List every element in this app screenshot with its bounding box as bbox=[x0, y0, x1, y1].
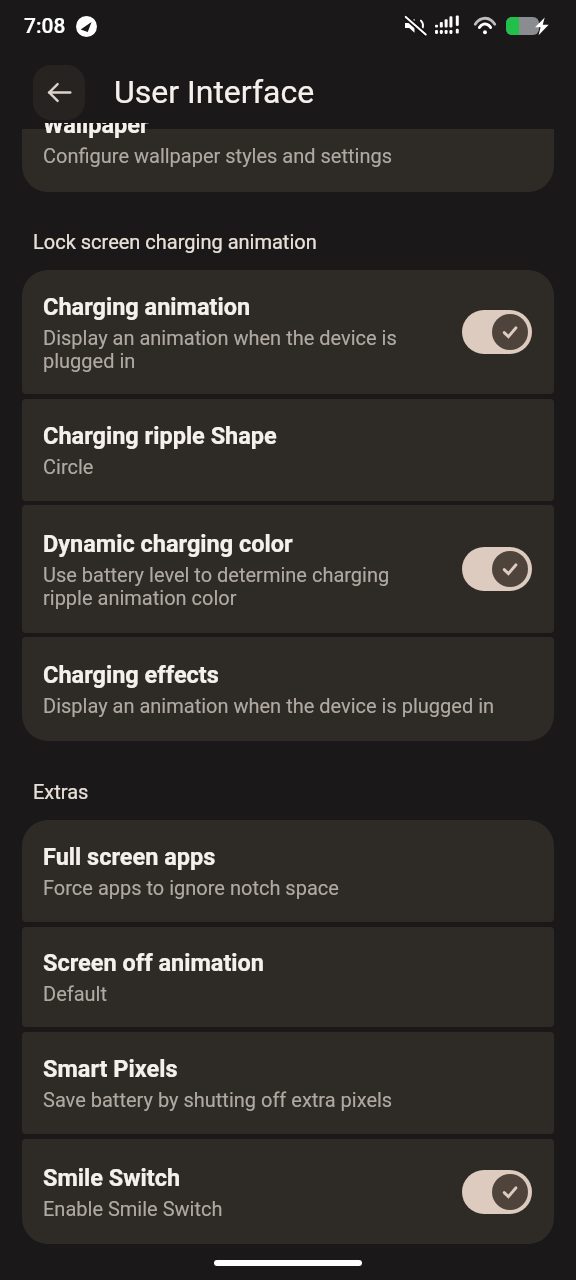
staticText: Use battery level to determine charging … bbox=[43, 563, 423, 609]
staticText: Charging animation bbox=[43, 293, 251, 321]
button[interactable]: Charging ripple Shape bbox=[22, 399, 554, 501]
staticText: Display an animation when the device is … bbox=[43, 326, 423, 372]
staticText: 7:08 bbox=[24, 14, 66, 39]
staticText: Save battery by shutting off extra pixel… bbox=[43, 1088, 393, 1111]
button[interactable]: Smart Pixels bbox=[22, 1032, 554, 1134]
staticText: Full screen apps bbox=[43, 843, 216, 871]
button[interactable]: Dynamic charging color bbox=[22, 505, 554, 633]
button[interactable]: Wallpaper bbox=[22, 123, 554, 192]
staticText: Screen off animation bbox=[43, 949, 265, 977]
staticText: Smile Switch bbox=[43, 1164, 181, 1192]
staticText: Dynamic charging color bbox=[43, 530, 293, 558]
staticText: Charging effects bbox=[43, 661, 219, 689]
button[interactable]: Charging effects bbox=[22, 637, 554, 741]
staticText: User Interface bbox=[114, 73, 315, 111]
button[interactable]: Toggle bbox=[462, 1170, 532, 1214]
button[interactable]: Toggle bbox=[462, 310, 532, 354]
staticText: Enable Smile Switch bbox=[43, 1197, 223, 1220]
button[interactable]: Screen off animation bbox=[22, 927, 554, 1027]
button[interactable]: Back bbox=[33, 65, 85, 120]
button[interactable]: Full screen apps bbox=[22, 820, 554, 922]
button[interactable]: Charging animation bbox=[22, 270, 554, 394]
staticText: Display an animation when the device is … bbox=[43, 694, 495, 717]
staticText: Circle bbox=[43, 455, 94, 478]
staticText: Configure wallpaper styles and settings bbox=[43, 144, 393, 167]
button[interactable]: Toggle bbox=[462, 547, 532, 591]
staticText: Smart Pixels bbox=[43, 1055, 178, 1083]
staticText: Extras bbox=[33, 780, 89, 803]
staticText: Wallpaper bbox=[43, 123, 149, 139]
staticText: Lock screen charging animation bbox=[33, 230, 317, 253]
staticText: Force apps to ignore notch space bbox=[43, 876, 339, 899]
staticText: Default bbox=[43, 982, 107, 1005]
button[interactable]: Smile Switch bbox=[22, 1139, 554, 1244]
staticText: Charging ripple Shape bbox=[43, 422, 277, 450]
